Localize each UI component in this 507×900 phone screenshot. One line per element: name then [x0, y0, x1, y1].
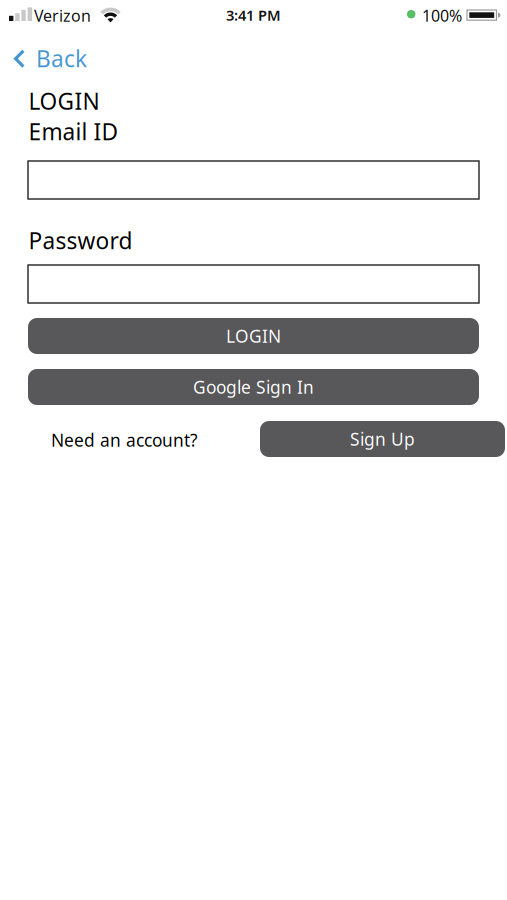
staticText: Verizon — [34, 5, 91, 26]
staticText: Back — [36, 43, 87, 73]
button[interactable]: Sign Up — [260, 421, 505, 457]
staticText: Password — [28, 225, 132, 255]
staticText: Google Sign In — [193, 375, 314, 398]
staticText: Sign Up — [350, 427, 415, 450]
staticText: Need an account? — [51, 428, 198, 451]
staticText: Email ID — [28, 116, 118, 146]
staticText: 100% — [422, 5, 462, 26]
button[interactable]: Google Sign In — [28, 369, 479, 405]
button[interactable]: Back — [0, 19, 120, 77]
staticText: LOGIN — [226, 324, 281, 347]
button[interactable]: LOGIN — [28, 318, 479, 354]
staticText: 3:41 PM — [226, 5, 281, 25]
staticText: LOGIN — [28, 86, 99, 116]
